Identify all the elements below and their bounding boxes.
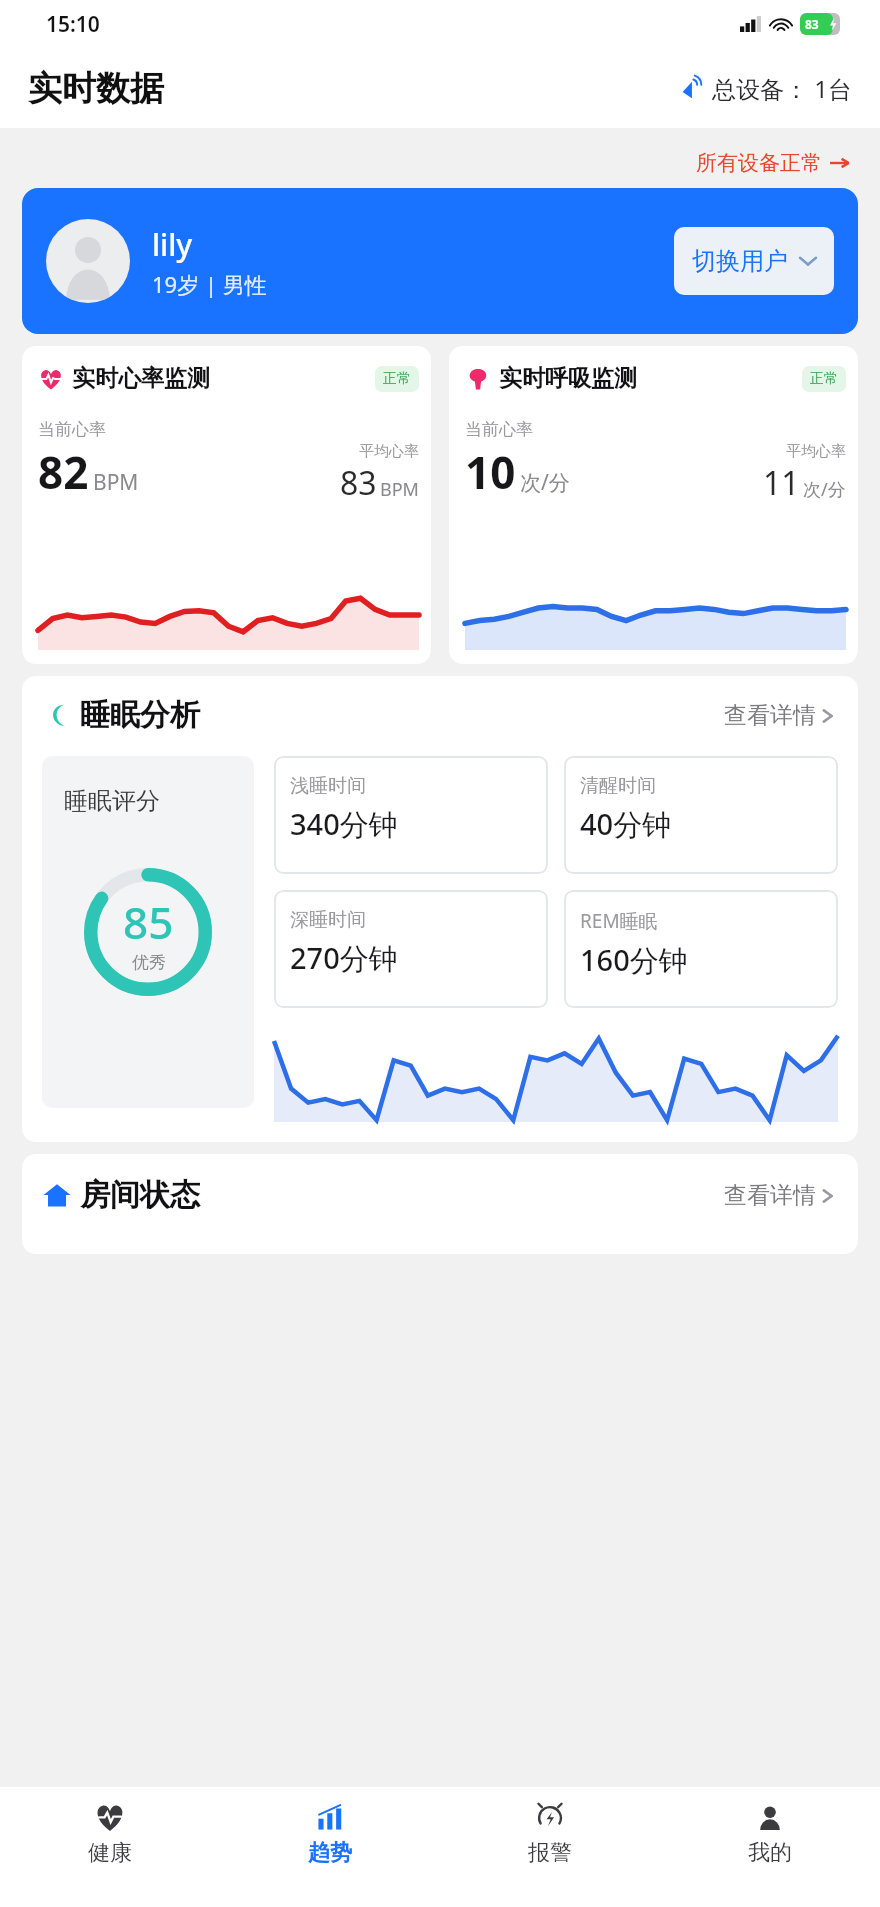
staticText: 所有设备正常 bbox=[696, 150, 822, 176]
button[interactable]: 健康 bbox=[0, 1787, 220, 1907]
staticText: BPM bbox=[93, 468, 139, 497]
staticText: 次/分 bbox=[803, 477, 846, 502]
button[interactable]: 深睡时间 bbox=[274, 890, 548, 1008]
staticText: 82 bbox=[38, 442, 89, 502]
staticText: BPM bbox=[380, 477, 419, 502]
staticText: 340分钟 bbox=[290, 804, 398, 844]
button[interactable]: 总设备： 1台 bbox=[680, 72, 852, 105]
button[interactable]: 实时心率监测 bbox=[22, 346, 431, 664]
staticText: 85 bbox=[123, 892, 174, 952]
staticText: 10 bbox=[465, 442, 516, 502]
staticText: 深睡时间 bbox=[290, 908, 366, 932]
staticText: 浅睡时间 bbox=[290, 774, 366, 798]
button[interactable]: 报警 bbox=[440, 1787, 660, 1907]
staticText: 当前心率 bbox=[38, 419, 106, 440]
staticText: 83 bbox=[805, 16, 819, 32]
staticText: 19岁 | 男性 bbox=[152, 269, 267, 299]
staticText: 11 bbox=[763, 461, 800, 505]
button[interactable]: 切换用户 bbox=[674, 227, 834, 295]
button[interactable]: lily bbox=[22, 188, 858, 334]
button[interactable]: 清醒时间 bbox=[564, 756, 838, 874]
staticText: 睡眠评分 bbox=[64, 786, 160, 816]
button[interactable]: 查看详情 bbox=[720, 697, 838, 734]
staticText: 平均心率 bbox=[786, 442, 846, 461]
staticText: 270分钟 bbox=[290, 938, 398, 978]
staticText: 正常 bbox=[810, 370, 838, 388]
staticText: 平均心率 bbox=[359, 442, 419, 461]
staticText: 实时呼吸监测 bbox=[499, 364, 637, 393]
button[interactable]: REM睡眠 bbox=[564, 890, 838, 1008]
staticText: 实时数据 bbox=[28, 67, 164, 110]
staticText: 房间状态 bbox=[80, 1176, 200, 1214]
staticText: 切换用户 bbox=[692, 246, 788, 276]
button[interactable]: 实时呼吸监测 bbox=[449, 346, 858, 664]
staticText: lily bbox=[152, 224, 193, 265]
button[interactable]: 趋势 bbox=[220, 1787, 440, 1907]
staticText: 次/分 bbox=[520, 468, 570, 497]
staticText: 我的 bbox=[748, 1839, 792, 1867]
staticText: 160分钟 bbox=[580, 940, 688, 980]
staticText: 趋势 bbox=[308, 1839, 352, 1867]
staticText: 报警 bbox=[528, 1839, 572, 1867]
staticText: 清醒时间 bbox=[580, 774, 656, 798]
staticText: 40分钟 bbox=[580, 804, 672, 844]
button[interactable]: 所有设备正常 bbox=[692, 146, 854, 180]
staticText: 查看详情 bbox=[724, 701, 816, 730]
staticText: 优秀 bbox=[132, 952, 166, 973]
button[interactable]: 查看详情 bbox=[720, 1177, 838, 1214]
staticText: 睡眠分析 bbox=[80, 696, 200, 734]
staticText: 15:10 bbox=[46, 10, 100, 39]
staticText: 查看详情 bbox=[724, 1181, 816, 1210]
staticText: 总设备： 1台 bbox=[712, 72, 852, 105]
staticText: 当前心率 bbox=[465, 419, 533, 440]
staticText: REM睡眠 bbox=[580, 908, 658, 934]
button[interactable]: 浅睡时间 bbox=[274, 756, 548, 874]
staticText: 健康 bbox=[88, 1839, 132, 1867]
staticText: 83 bbox=[340, 461, 377, 505]
staticText: 正常 bbox=[383, 370, 411, 388]
staticText: 实时心率监测 bbox=[72, 364, 210, 393]
button[interactable]: 我的 bbox=[660, 1787, 880, 1907]
